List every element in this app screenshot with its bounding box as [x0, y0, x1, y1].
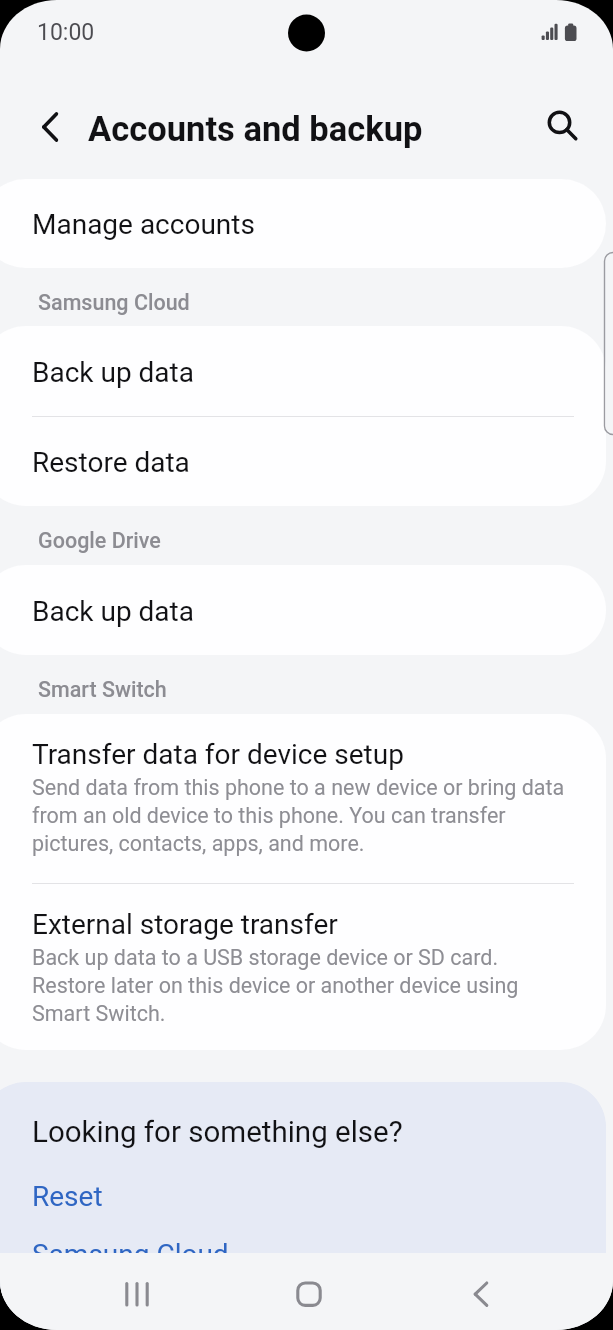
staticText: Reset: [32, 1180, 103, 1213]
button[interactable]: Reset: [0, 1180, 605, 1213]
button[interactable]: Back up data: [0, 565, 605, 655]
staticText: Restore data: [32, 446, 190, 479]
button[interactable]: Samsung Cloud: [0, 1238, 605, 1271]
button[interactable]: Back up data: [0, 326, 605, 416]
staticText: Send data from this phone to a new devic…: [32, 773, 567, 857]
button[interactable]: Transfer data for device setup: [0, 714, 605, 883]
staticText: Google Drive: [38, 528, 161, 553]
staticText: Samsung Cloud: [38, 290, 190, 315]
button[interactable]: Manage accounts: [0, 179, 605, 268]
staticText: Samsung Cloud: [32, 1238, 229, 1271]
button[interactable]: External storage transfer: [0, 884, 605, 1050]
staticText: Back up data to a USB storage device or …: [32, 943, 567, 1027]
button[interactable]: Navigate up: [13, 91, 85, 163]
staticText: External storage transfer: [32, 908, 338, 941]
staticText: Back up data: [32, 595, 194, 628]
staticText: Smart Switch: [38, 677, 167, 702]
staticText: Transfer data for device setup: [32, 738, 404, 771]
button[interactable]: Search: [524, 89, 596, 161]
button[interactable]: Recent apps: [51, 1253, 223, 1330]
staticText: Manage accounts: [32, 208, 255, 241]
staticText: Looking for something else?: [32, 1115, 403, 1150]
staticText: Accounts and backup: [88, 109, 423, 149]
staticText: Back up data: [32, 356, 194, 389]
button[interactable]: Back: [395, 1253, 567, 1330]
staticText: 10:00: [37, 19, 95, 46]
button[interactable]: Home: [223, 1253, 395, 1330]
button[interactable]: Restore data: [0, 417, 605, 506]
